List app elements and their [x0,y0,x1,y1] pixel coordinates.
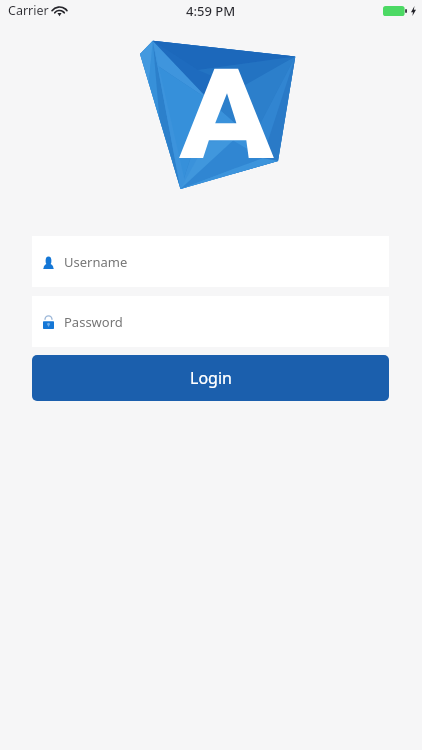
staticText: 4:59 PM [186,2,236,20]
button[interactable]: Login [32,355,389,401]
staticText: Username [64,253,128,271]
staticText: Password [64,313,123,331]
button[interactable]: Username [32,236,389,287]
staticText: Login [190,367,232,389]
button[interactable]: Password [32,296,389,347]
staticText: Carrier [8,2,49,19]
